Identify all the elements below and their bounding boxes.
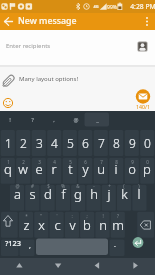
staticText: &	[76, 183, 80, 189]
staticText: 3	[36, 135, 43, 151]
button[interactable]: 5	[61, 132, 79, 154]
button[interactable]: f	[54, 183, 72, 205]
staticText: 99%	[107, 4, 117, 11]
button[interactable]	[5, 259, 33, 274]
staticText: y	[82, 160, 89, 178]
staticText: ?123	[5, 238, 21, 248]
button[interactable]: 8	[107, 132, 125, 154]
staticText: ;	[86, 213, 88, 219]
button[interactable]: s	[23, 183, 41, 205]
staticText: 4:28 PM	[130, 2, 155, 11]
staticText: 4	[51, 135, 58, 151]
staticText: 3	[38, 159, 41, 165]
button[interactable]: c	[48, 214, 66, 236]
button[interactable]	[134, 87, 153, 106]
button[interactable]: k	[115, 183, 133, 205]
staticText: ,	[29, 241, 31, 251]
staticText: 2	[20, 135, 27, 151]
button[interactable]: o	[123, 158, 141, 180]
button[interactable]	[83, 259, 111, 274]
button[interactable]	[0, 13, 17, 30]
staticText: $	[47, 183, 50, 189]
button[interactable]	[1, 212, 18, 238]
button[interactable]: z	[17, 214, 35, 236]
button[interactable]: 4	[45, 132, 63, 154]
staticText: s	[29, 185, 36, 203]
button[interactable]: p	[138, 158, 155, 180]
button[interactable]: v	[63, 214, 81, 236]
staticText: p	[143, 160, 151, 178]
staticText: 5	[69, 159, 72, 165]
button[interactable]: i	[107, 158, 125, 180]
button[interactable]: d	[39, 183, 57, 205]
button[interactable]: l	[130, 183, 148, 205]
staticText: @	[15, 183, 20, 189]
staticText: -	[93, 183, 95, 189]
staticText: a	[14, 185, 21, 203]
staticText: !	[102, 213, 104, 219]
button[interactable]: 1	[0, 132, 17, 154]
button[interactable]	[2, 97, 14, 109]
staticText: z	[23, 216, 30, 234]
staticText: t	[68, 160, 73, 178]
button[interactable]: 6	[76, 132, 94, 154]
button[interactable]: n	[94, 214, 112, 236]
button[interactable]: .	[106, 234, 124, 256]
staticText: 1	[5, 135, 12, 151]
button[interactable]: w	[14, 158, 32, 180]
button[interactable]	[122, 259, 150, 274]
button[interactable]: e	[30, 158, 48, 180]
button[interactable]: 2	[14, 132, 32, 154]
staticText: 1	[7, 159, 10, 165]
button[interactable]	[132, 237, 144, 249]
button[interactable]: t	[61, 158, 79, 180]
button[interactable]: 0	[138, 132, 155, 154]
button[interactable]	[36, 238, 108, 255]
button[interactable]: j	[100, 183, 118, 205]
staticText: Enter recipients	[6, 42, 51, 50]
button[interactable]: ,	[45, 109, 63, 131]
staticText: x	[38, 216, 45, 234]
staticText: @	[73, 116, 79, 124]
button[interactable]	[44, 259, 72, 274]
button[interactable]: _	[88, 109, 106, 131]
staticText: u	[97, 160, 105, 178]
staticText: 7	[98, 135, 105, 151]
staticText: w	[18, 160, 28, 178]
button[interactable]: 3	[30, 132, 48, 154]
staticText: 6	[84, 159, 87, 165]
staticText: b	[83, 216, 91, 234]
button[interactable]: x	[32, 214, 50, 236]
button[interactable]: 9	[123, 132, 141, 154]
button[interactable]: ?123	[2, 236, 23, 249]
button[interactable]: r	[45, 158, 63, 180]
button[interactable]: m	[109, 214, 127, 236]
button[interactable]: h	[85, 183, 103, 205]
staticText: "	[40, 213, 42, 219]
button[interactable]: b	[78, 214, 96, 236]
button[interactable]	[0, 30, 155, 66]
button[interactable]: q	[0, 158, 17, 180]
button[interactable]: ?	[23, 109, 41, 131]
button[interactable]	[0, 66, 155, 111]
staticText: *	[25, 213, 28, 219]
staticText: 0	[144, 135, 151, 151]
staticText: 8	[115, 159, 118, 165]
staticText: ?	[117, 213, 119, 219]
button[interactable]: a	[8, 183, 26, 205]
staticText: '	[56, 213, 58, 219]
staticText: 5	[67, 135, 74, 151]
button[interactable]: u	[92, 158, 110, 180]
staticText: .	[114, 240, 116, 250]
staticText: f	[61, 185, 66, 203]
button[interactable]	[137, 212, 154, 238]
staticText: d	[44, 185, 52, 203]
button[interactable]: 7	[92, 132, 110, 154]
button[interactable]	[139, 13, 155, 30]
button[interactable]: @	[67, 109, 85, 131]
button[interactable]: g	[69, 183, 87, 205]
button[interactable]: y	[76, 158, 94, 180]
button[interactable]: !	[1, 109, 19, 131]
button[interactable]: ,	[21, 235, 39, 257]
button[interactable]	[135, 39, 150, 54]
